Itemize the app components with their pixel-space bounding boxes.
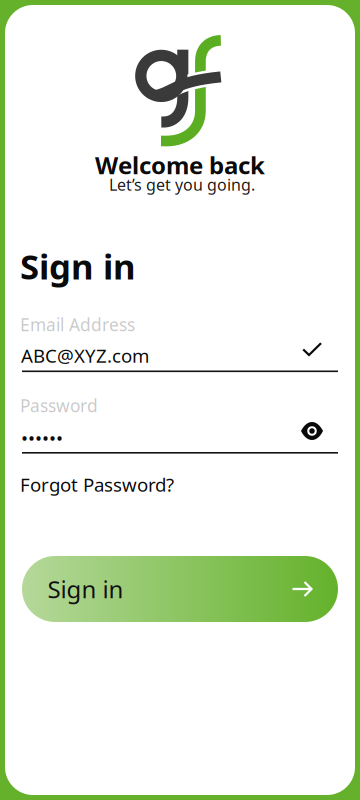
- staticText: Forgot Password?: [20, 472, 174, 497]
- staticText: Sign in: [20, 243, 136, 289]
- staticText: ••••••: [21, 425, 63, 450]
- staticText: Sign in: [47, 573, 123, 605]
- button[interactable]: Email address verified: [296, 336, 328, 362]
- staticText: Email Address: [20, 313, 135, 336]
- staticText: ABC@XYZ.com: [21, 343, 149, 368]
- button[interactable]: Forgot Password?: [20, 472, 174, 497]
- staticText: Let’s get you going.: [109, 174, 255, 195]
- button[interactable]: Sign in: [22, 556, 338, 622]
- staticText: Welcome back: [95, 149, 265, 181]
- staticText: Password: [20, 394, 98, 417]
- button[interactable]: Show password: [295, 417, 329, 445]
